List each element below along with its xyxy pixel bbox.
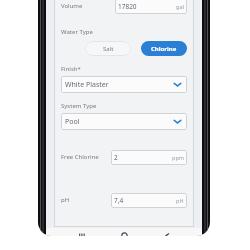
staticText: ppm (172, 154, 184, 161)
staticText: Free Chlorine (61, 153, 111, 161)
staticText: White Plaster (65, 80, 172, 90)
staticText: gal (176, 3, 184, 10)
staticText: 17820 (118, 2, 176, 11)
other: Expand dropdown (172, 79, 183, 90)
button[interactable]: 7,4 (111, 193, 187, 208)
staticText: System Type (61, 102, 97, 110)
staticText: Volume (61, 2, 115, 10)
button[interactable]: Home (116, 228, 132, 236)
staticText: Chlorine (151, 45, 177, 53)
staticText: 7,4 (114, 196, 176, 205)
button[interactable]: 2 (111, 150, 187, 165)
staticText: 2 (114, 153, 172, 162)
staticText: pH (176, 197, 184, 204)
staticText: Salt (103, 45, 114, 53)
staticText: Finish* (61, 65, 81, 73)
button[interactable]: Chlorine (141, 41, 187, 56)
button[interactable]: 17820 (115, 0, 187, 14)
button[interactable]: Pool (61, 113, 187, 130)
other: Expand dropdown (172, 116, 183, 127)
button[interactable]: Salt (85, 41, 131, 56)
staticText: pH (61, 196, 111, 204)
button[interactable]: Back (159, 228, 175, 236)
button[interactable]: Recents (73, 228, 89, 236)
staticText: Water Type (61, 28, 93, 36)
staticText: Pool (65, 117, 172, 127)
button[interactable]: White Plaster (61, 76, 187, 93)
